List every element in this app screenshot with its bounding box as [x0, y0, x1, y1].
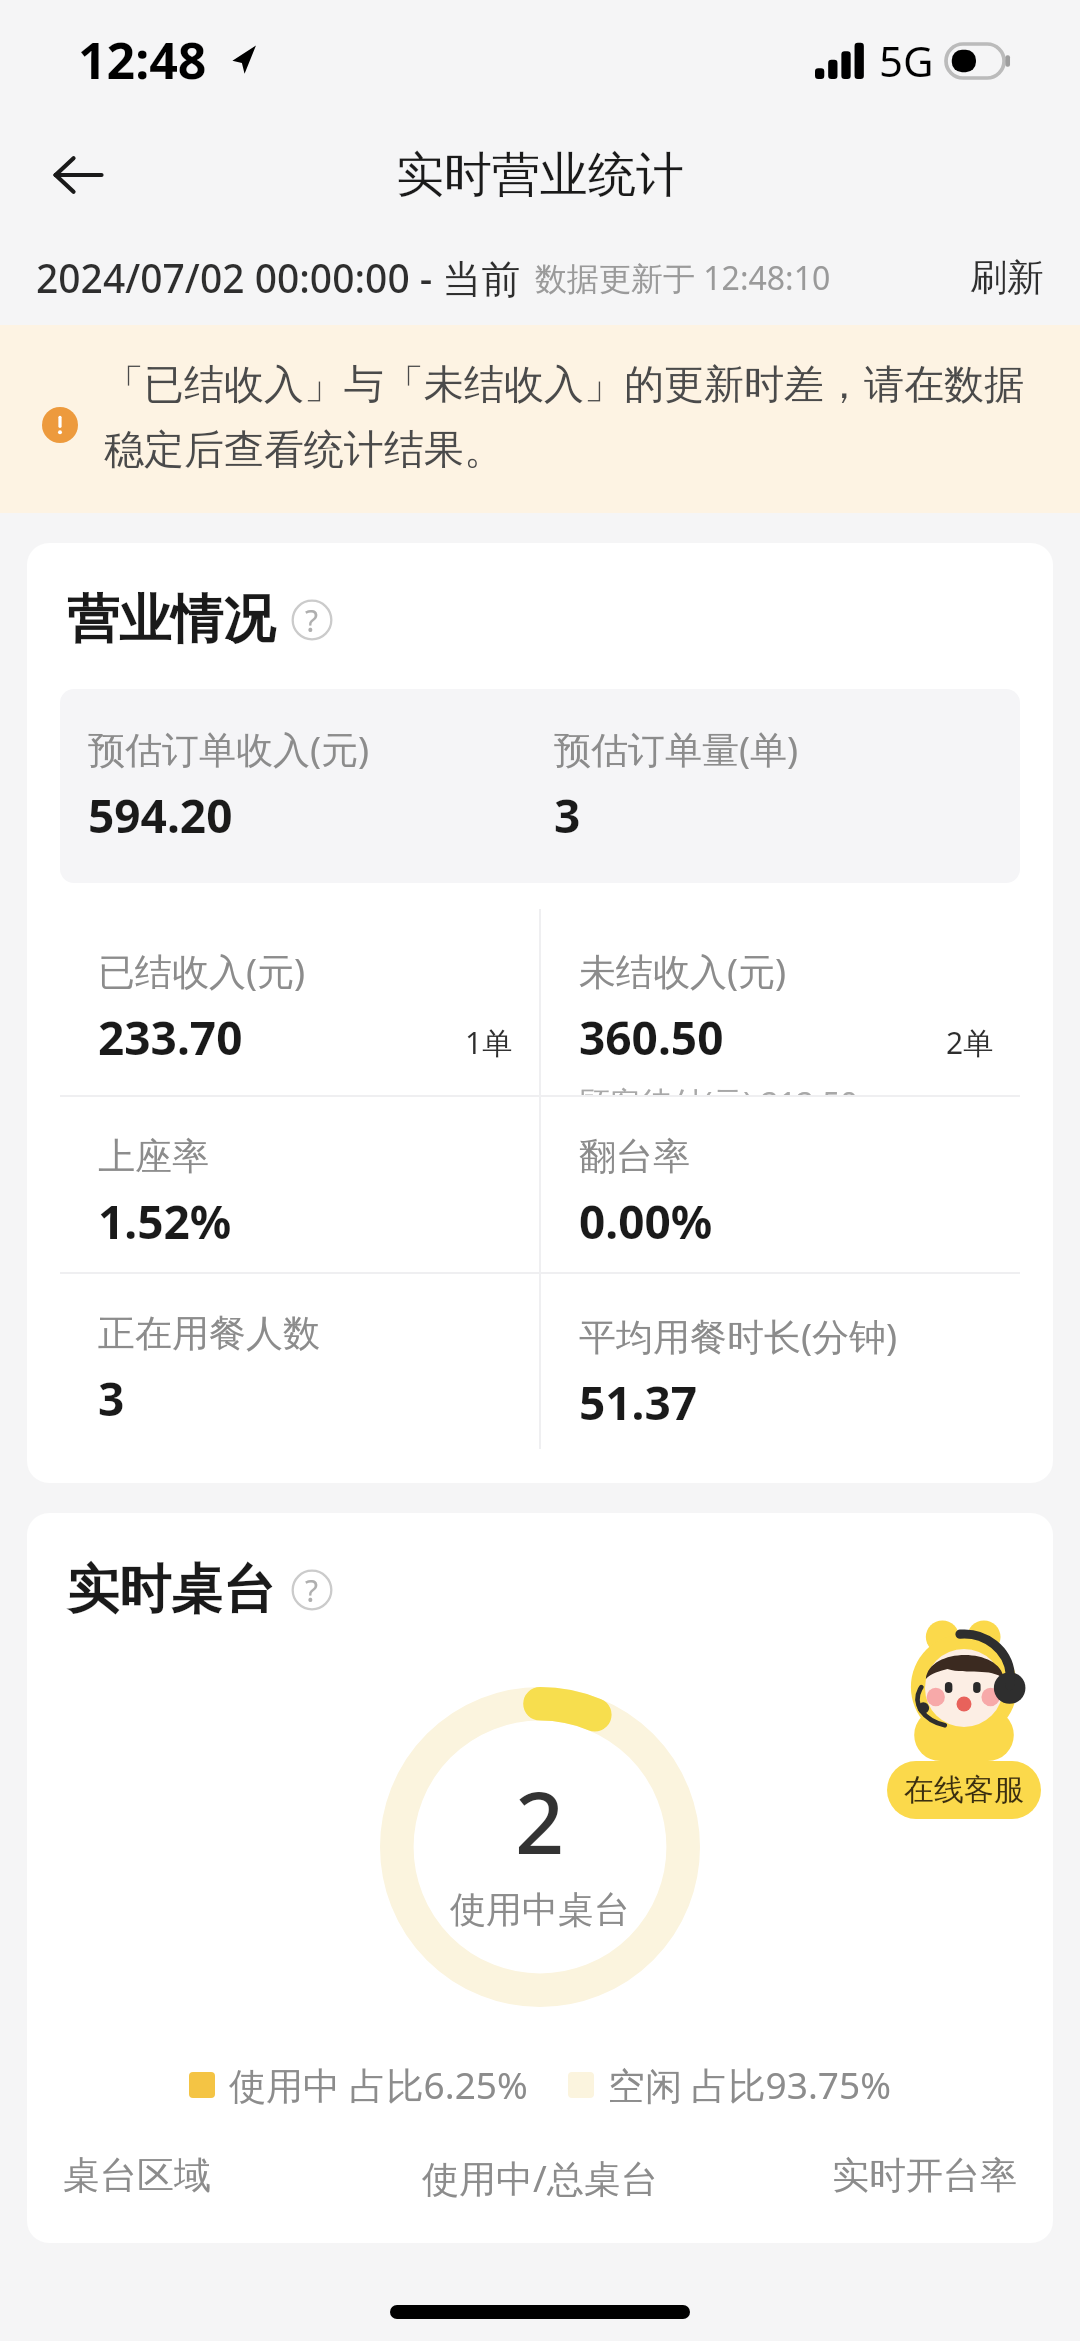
staticText: 桌台区域	[63, 2152, 361, 2199]
button[interactable]: 在线客服	[881, 1619, 1047, 1819]
button[interactable]: 刷新	[970, 254, 1044, 301]
staticText: 刷新	[970, 254, 1044, 301]
button[interactable]: 已结收入(元)	[60, 909, 539, 1095]
staticText: ?	[305, 1570, 319, 1611]
staticText: 实时桌台	[67, 1557, 275, 1623]
button[interactable]: 帮助	[291, 599, 333, 641]
staticText: 3	[98, 1367, 125, 1430]
staticText: 实时营业统计	[396, 145, 684, 205]
staticText: 360.50	[579, 1006, 724, 1069]
staticText: 实时开台率	[719, 2152, 1017, 2199]
staticText: 12:48	[78, 26, 207, 94]
staticText: 使用中/总桌台	[361, 2152, 719, 2203]
staticText: 在线客服	[904, 1771, 1024, 1809]
staticText: 平均用餐时长(分钟)	[579, 1310, 898, 1361]
staticText: 1.52%	[98, 1190, 232, 1253]
staticText: 上座率	[98, 1133, 209, 1180]
staticText: 空闲 占比93.75%	[608, 2059, 891, 2110]
staticText: 5G	[879, 32, 934, 89]
staticText: 0.00%	[579, 1190, 713, 1253]
staticText: 2	[515, 1762, 565, 1879]
staticText: 顾客待付(元):212.50	[579, 1081, 858, 1095]
staticText: 翻台率	[579, 1133, 690, 1180]
staticText: 1单	[465, 1022, 513, 1063]
staticText: 51.37	[579, 1371, 698, 1434]
staticText: 使用中 占比6.25%	[229, 2059, 528, 2110]
staticText: 数据更新于 12:48:10	[535, 256, 831, 300]
staticText: 预估订单收入(元)	[88, 723, 370, 774]
staticText: 3	[554, 784, 581, 847]
staticText: 2024/07/02 00:00:00 - 当前	[36, 251, 521, 304]
staticText: 正在用餐人数	[98, 1310, 320, 1357]
staticText: 预估订单量(单)	[554, 723, 799, 774]
staticText: 「已结收入」与「未结收入」的更新时差，请在数据稳定后查看统计结果。	[104, 359, 1040, 475]
button[interactable]: 平均用餐时长(分钟)	[541, 1274, 1020, 1449]
button[interactable]: 翻台率	[541, 1097, 1020, 1272]
button[interactable]: 未结收入(元)	[541, 909, 1020, 1095]
button[interactable]: Back	[40, 137, 116, 213]
button[interactable]: 帮助	[291, 1569, 333, 1611]
staticText: 233.70	[98, 1006, 243, 1069]
staticText: 未结收入(元)	[579, 945, 787, 996]
staticText: 2单	[946, 1022, 994, 1063]
staticText: 营业情况	[67, 587, 275, 653]
staticText: 使用中桌台	[450, 1887, 630, 1932]
staticText: 已结收入(元)	[98, 945, 306, 996]
button[interactable]: 正在用餐人数	[60, 1274, 539, 1449]
staticText: 594.20	[88, 784, 233, 847]
staticText: ?	[305, 600, 319, 641]
button[interactable]: 上座率	[60, 1097, 539, 1272]
